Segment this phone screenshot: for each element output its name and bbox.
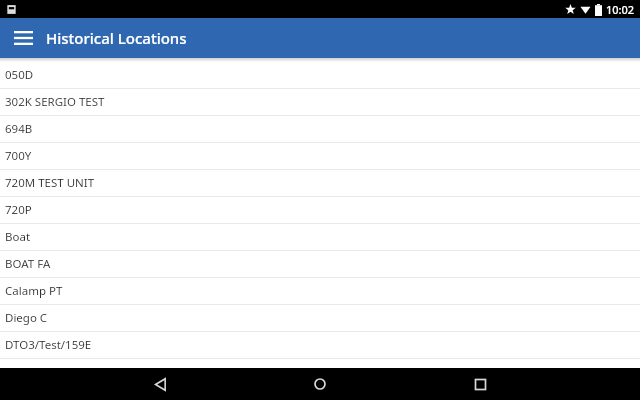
staticText: 694B: [5, 121, 33, 137]
staticText: 302K SERGIO TEST: [5, 94, 105, 110]
staticText: 700Y: [5, 148, 32, 164]
button[interactable]: 302K SERGIO TEST: [0, 89, 640, 116]
staticText: 720M TEST UNIT: [5, 175, 95, 191]
button[interactable]: 720P: [0, 197, 640, 224]
button[interactable]: Back: [140, 368, 180, 400]
button[interactable]: Home: [300, 368, 340, 400]
staticText: 10:02: [606, 2, 635, 17]
button[interactable]: Open navigation drawer: [7, 22, 39, 54]
button[interactable]: Boat: [0, 224, 640, 251]
button[interactable]: BOAT FA: [0, 251, 640, 278]
staticText: Boat: [5, 229, 31, 245]
staticText: 050D: [5, 67, 34, 83]
button[interactable]: 700Y: [0, 143, 640, 170]
staticText: Historical Locations: [46, 28, 187, 48]
button[interactable]: 720M TEST UNIT: [0, 170, 640, 197]
button[interactable]: 694B: [0, 116, 640, 143]
staticText: DTO3/Test/159E: [5, 337, 92, 353]
staticText: 720P: [5, 202, 32, 218]
button[interactable]: Diego C: [0, 305, 640, 332]
staticText: Calamp PT: [5, 283, 63, 299]
staticText: Diego C: [5, 310, 48, 326]
button[interactable]: 050D: [0, 62, 640, 89]
button[interactable]: DTO3/Test/159E: [0, 332, 640, 359]
button[interactable]: Recent apps: [460, 368, 500, 400]
staticText: BOAT FA: [5, 256, 51, 272]
button[interactable]: Calamp PT: [0, 278, 640, 305]
